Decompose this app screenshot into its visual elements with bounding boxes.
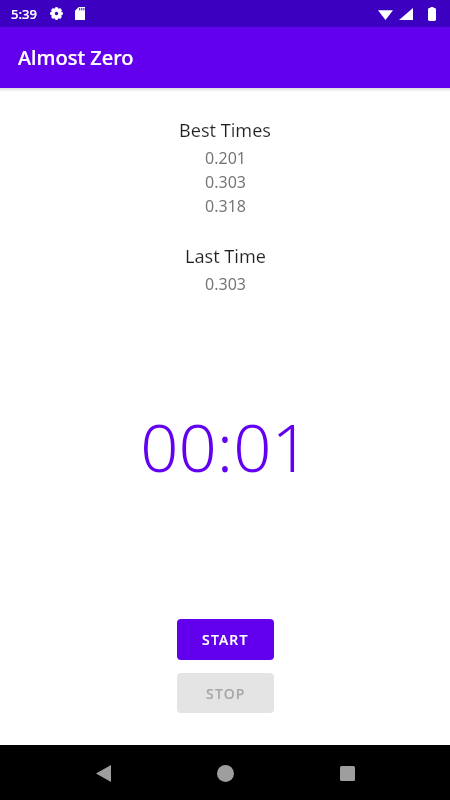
staticText: Best Times (179, 118, 271, 143)
staticText: 5:39 (11, 5, 37, 23)
staticText: 0.303 (205, 273, 246, 295)
button[interactable]: START (177, 619, 274, 660)
staticText: START (202, 630, 249, 649)
other: Settings (50, 7, 63, 20)
other: Storage (75, 7, 85, 20)
staticText: 00:01 (140, 400, 310, 491)
button[interactable]: STOP (177, 673, 274, 713)
button[interactable]: Home (205, 753, 245, 793)
staticText: 0.303 (205, 171, 246, 193)
staticText: STOP (206, 684, 246, 703)
staticText: Almost Zero (18, 44, 134, 71)
button[interactable]: Back (83, 753, 123, 793)
staticText: Last Time (185, 244, 266, 269)
staticText: 0.201 (205, 147, 246, 169)
staticText: 0.318 (205, 195, 246, 217)
button[interactable]: Recent apps (327, 753, 367, 793)
